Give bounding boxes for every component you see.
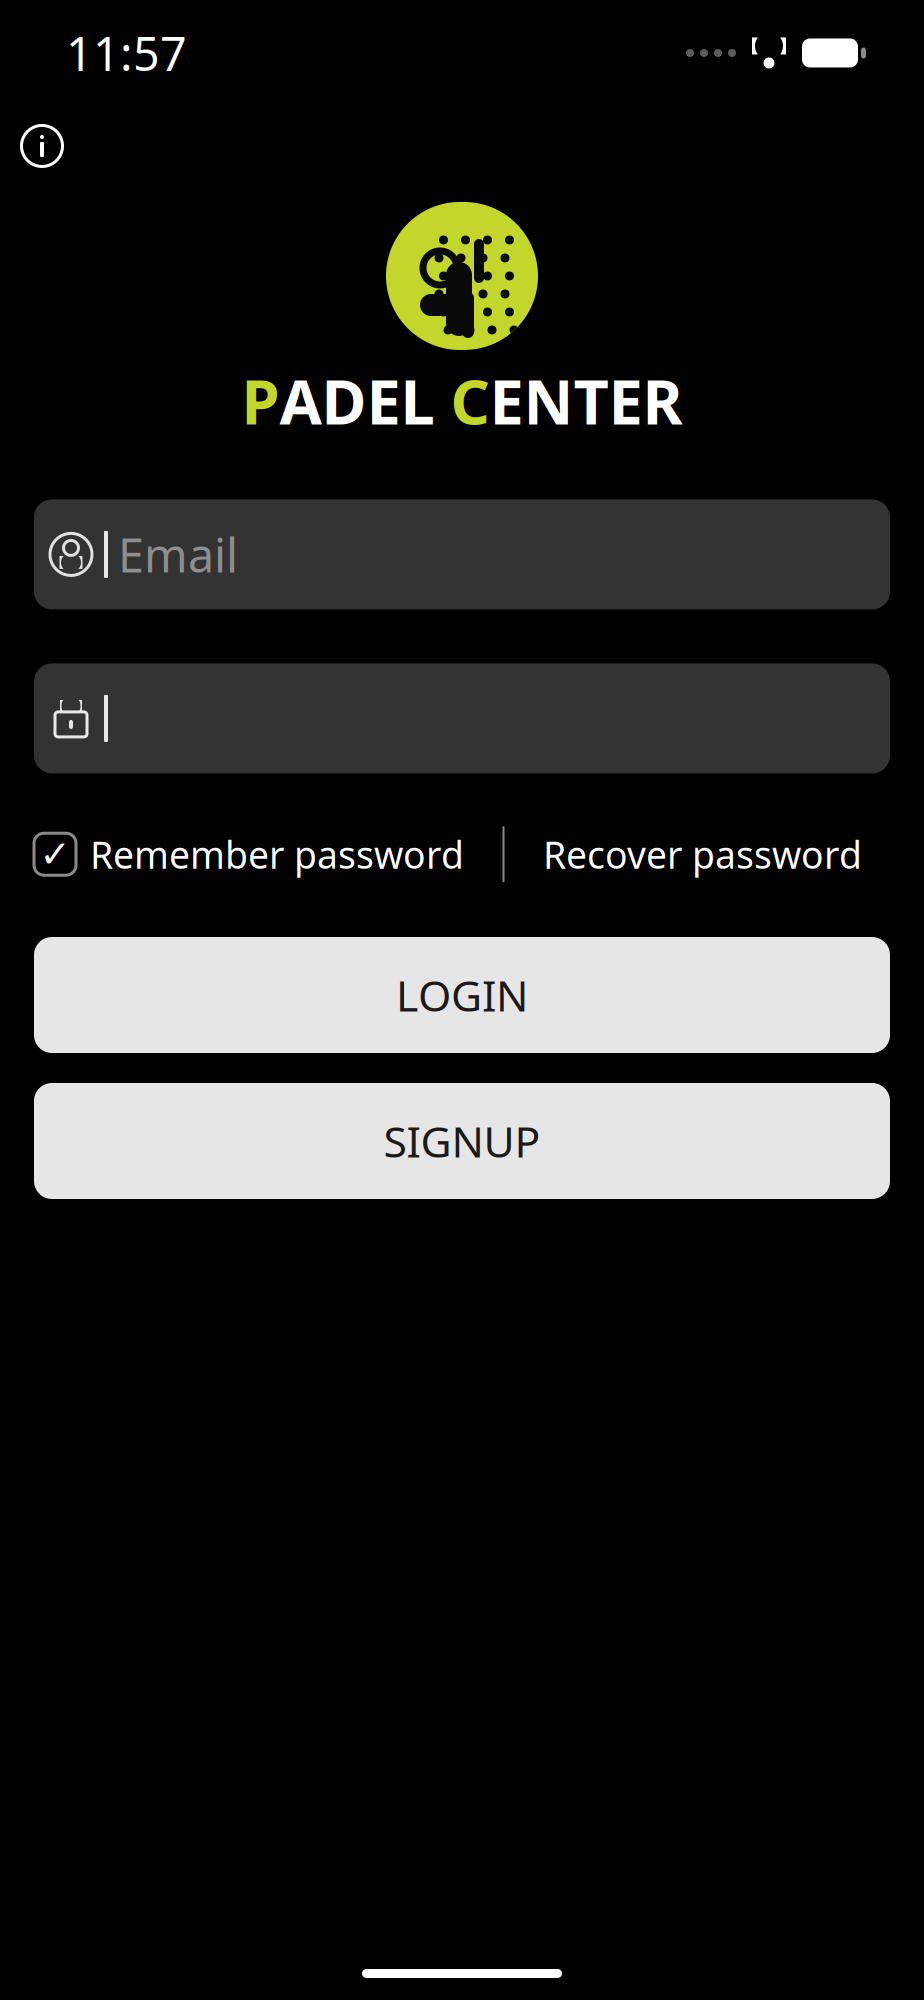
staticText: SIGNUP — [383, 1113, 540, 1169]
button[interactable]: Email — [34, 499, 890, 609]
staticText: Email — [118, 523, 238, 585]
staticText: ENTER — [489, 360, 682, 441]
button[interactable] — [34, 663, 890, 773]
button[interactable]: SIGNUP — [34, 1083, 890, 1199]
staticText: 11:57 — [66, 22, 187, 84]
button[interactable]: ✓ — [34, 817, 464, 891]
button[interactable]: Information — [14, 118, 70, 174]
staticText: Remember password — [90, 829, 464, 879]
button[interactable]: LOGIN — [34, 937, 890, 1053]
staticText: C — [450, 360, 489, 441]
staticText: ADEL — [279, 360, 434, 441]
staticText: Recover password — [543, 829, 862, 879]
staticText: P — [241, 360, 279, 441]
staticText: LOGIN — [396, 967, 528, 1023]
button[interactable]: Recover password — [543, 817, 890, 891]
staticText: ✓ — [39, 833, 70, 875]
